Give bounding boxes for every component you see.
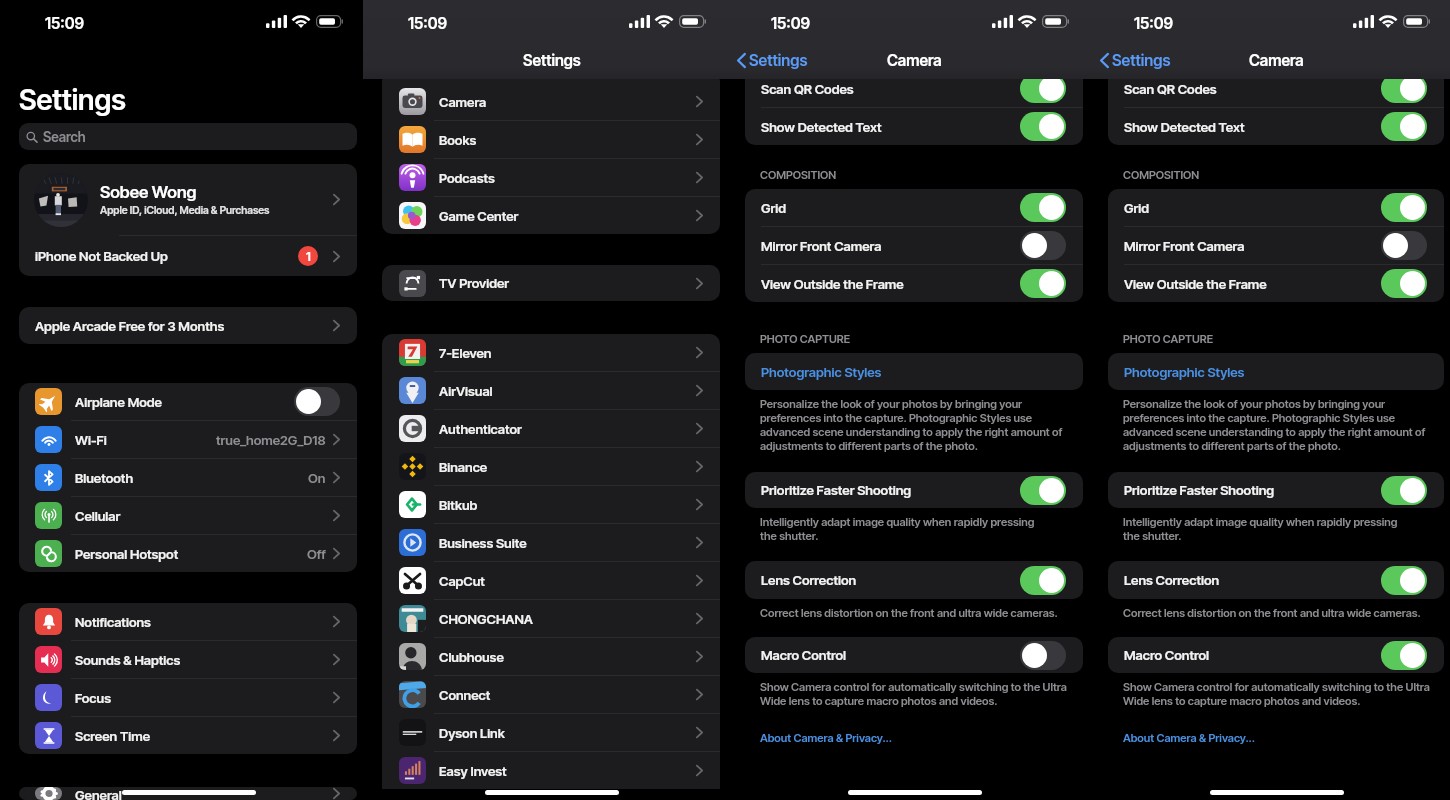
button[interactable]: Focus: [19, 679, 357, 716]
button[interactable]: Cellular: [19, 497, 357, 534]
button[interactable]: 7-Eleven: [382, 334, 720, 371]
button[interactable]: About Camera & Privacy...: [1123, 731, 1255, 745]
button[interactable]: Personal Hotspot: [19, 535, 357, 572]
staticText: PHOTO CAPTURE: [760, 332, 851, 346]
staticText: Search: [43, 129, 86, 145]
button[interactable]: Scan QR Codes: [1020, 74, 1066, 103]
button[interactable]: Apple Arcade Free for 3 Months: [19, 307, 357, 344]
button[interactable]: Clubhouse: [382, 638, 720, 675]
button[interactable]: Sounds & Haptics: [19, 641, 357, 678]
staticText: 15:09: [1134, 14, 1173, 33]
button[interactable]: Connect: [382, 676, 720, 713]
button[interactable]: Lens Correction: [745, 561, 1083, 599]
button[interactable]: Grid: [745, 189, 1083, 226]
staticText: On: [308, 470, 326, 486]
button[interactable]: Macro Control: [1381, 641, 1427, 670]
staticText: Camera: [1249, 51, 1304, 70]
staticText: Settings: [523, 51, 581, 70]
button[interactable]: Sobee Wong: [19, 164, 357, 235]
staticText: Prioritize Faster Shooting: [761, 482, 1020, 498]
button[interactable]: Mirror Front Camera: [1108, 227, 1444, 264]
button[interactable]: Books: [382, 121, 720, 158]
staticText: Photographic Styles: [761, 364, 882, 380]
staticText: Personalize the look of your photos by b…: [760, 397, 1071, 453]
button[interactable]: View Outside the Frame: [1381, 269, 1427, 298]
button[interactable]: View Outside the Frame: [745, 265, 1083, 302]
staticText: 15:09: [408, 14, 447, 33]
button[interactable]: Lens Correction: [1020, 566, 1066, 595]
staticText: Apple Arcade Free for 3 Months: [35, 318, 333, 334]
staticText: Books: [439, 132, 696, 148]
button[interactable]: Grid: [1020, 193, 1066, 222]
staticText: Show Camera control for automatically sw…: [760, 680, 1067, 708]
staticText: Prioritize Faster Shooting: [1124, 482, 1381, 498]
staticText: Show Camera control for automatically sw…: [1123, 680, 1430, 708]
button[interactable]: Mirror Front Camera: [1381, 231, 1427, 260]
button[interactable]: AirVisual: [382, 372, 720, 409]
button[interactable]: Bitkub: [382, 486, 720, 523]
button[interactable]: Bluetooth: [19, 459, 357, 496]
button[interactable]: Grid: [1108, 189, 1444, 226]
button[interactable]: Show Detected Text: [1381, 112, 1427, 141]
button[interactable]: Scan QR Codes: [745, 70, 1083, 107]
staticText: About Camera & Privacy...: [1123, 731, 1255, 745]
button[interactable]: Lens Correction: [1381, 566, 1427, 595]
button[interactable]: Dyson Link: [382, 714, 720, 751]
button[interactable]: View Outside the Frame: [1108, 265, 1444, 302]
staticText: 15:09: [45, 14, 84, 33]
button[interactable]: View Outside the Frame: [1020, 269, 1066, 298]
staticText: Camera: [439, 94, 696, 110]
button[interactable]: TV Provider: [382, 265, 720, 301]
button[interactable]: iPhone Not Backed Up: [19, 236, 357, 276]
button[interactable]: Photographic Styles: [745, 353, 1083, 390]
button[interactable]: Camera: [382, 83, 720, 120]
button[interactable]: Authenticator: [382, 410, 720, 447]
button[interactable]: Business Suite: [382, 524, 720, 561]
button[interactable]: Wi-Fi: [19, 421, 357, 458]
button[interactable]: Macro Control: [1108, 637, 1444, 673]
button[interactable]: CapCut: [382, 562, 720, 599]
button[interactable]: Lens Correction: [1108, 561, 1444, 599]
button[interactable]: About Camera & Privacy...: [760, 731, 892, 745]
staticText: Podcasts: [439, 170, 696, 186]
button[interactable]: Settings: [1100, 51, 1171, 70]
button[interactable]: Prioritize Faster Shooting: [1020, 476, 1066, 505]
button[interactable]: General: [19, 787, 357, 800]
button[interactable]: Airplane Mode: [19, 383, 357, 420]
button[interactable]: Prioritize Faster Shooting: [1381, 476, 1427, 505]
button[interactable]: Search: [19, 123, 357, 150]
staticText: Show Detected Text: [761, 119, 1020, 135]
button[interactable]: Airplane Mode: [294, 387, 340, 416]
button[interactable]: Prioritize Faster Shooting: [1108, 472, 1444, 508]
button[interactable]: Mirror Front Camera: [1020, 231, 1066, 260]
button[interactable]: Macro Control: [745, 637, 1083, 673]
staticText: Focus: [75, 690, 333, 706]
button[interactable]: Notifications: [19, 603, 357, 640]
button[interactable]: Mirror Front Camera: [745, 227, 1083, 264]
button[interactable]: Macro Control: [1020, 641, 1066, 670]
button[interactable]: Game Center: [382, 197, 720, 234]
button[interactable]: Show Detected Text: [1108, 108, 1444, 145]
staticText: COMPOSITION: [1123, 168, 1200, 182]
staticText: Clubhouse: [439, 649, 696, 665]
button[interactable]: Grid: [1381, 193, 1427, 222]
staticText: Sobee Wong: [100, 182, 197, 202]
staticText: Personalize the look of your photos by b…: [1123, 397, 1432, 453]
button[interactable]: Photographic Styles: [1108, 353, 1444, 390]
staticText: Binance: [439, 459, 696, 475]
button[interactable]: Show Detected Text: [745, 108, 1083, 145]
staticText: Macro Control: [1124, 647, 1381, 663]
button[interactable]: Show Detected Text: [1020, 112, 1066, 141]
button[interactable]: Settings: [737, 51, 808, 70]
staticText: Intelligently adapt image quality when r…: [760, 515, 1035, 543]
button[interactable]: Screen Time: [19, 717, 357, 754]
staticText: 15:09: [771, 14, 810, 33]
button[interactable]: Binance: [382, 448, 720, 485]
button[interactable]: Easy Invest: [382, 752, 720, 789]
staticText: Macro Control: [761, 647, 1020, 663]
button[interactable]: Prioritize Faster Shooting: [745, 472, 1083, 508]
button[interactable]: Scan QR Codes: [1381, 74, 1427, 103]
button[interactable]: CHONGCHANA: [382, 600, 720, 637]
button[interactable]: Podcasts: [382, 159, 720, 196]
button[interactable]: Scan QR Codes: [1108, 70, 1444, 107]
